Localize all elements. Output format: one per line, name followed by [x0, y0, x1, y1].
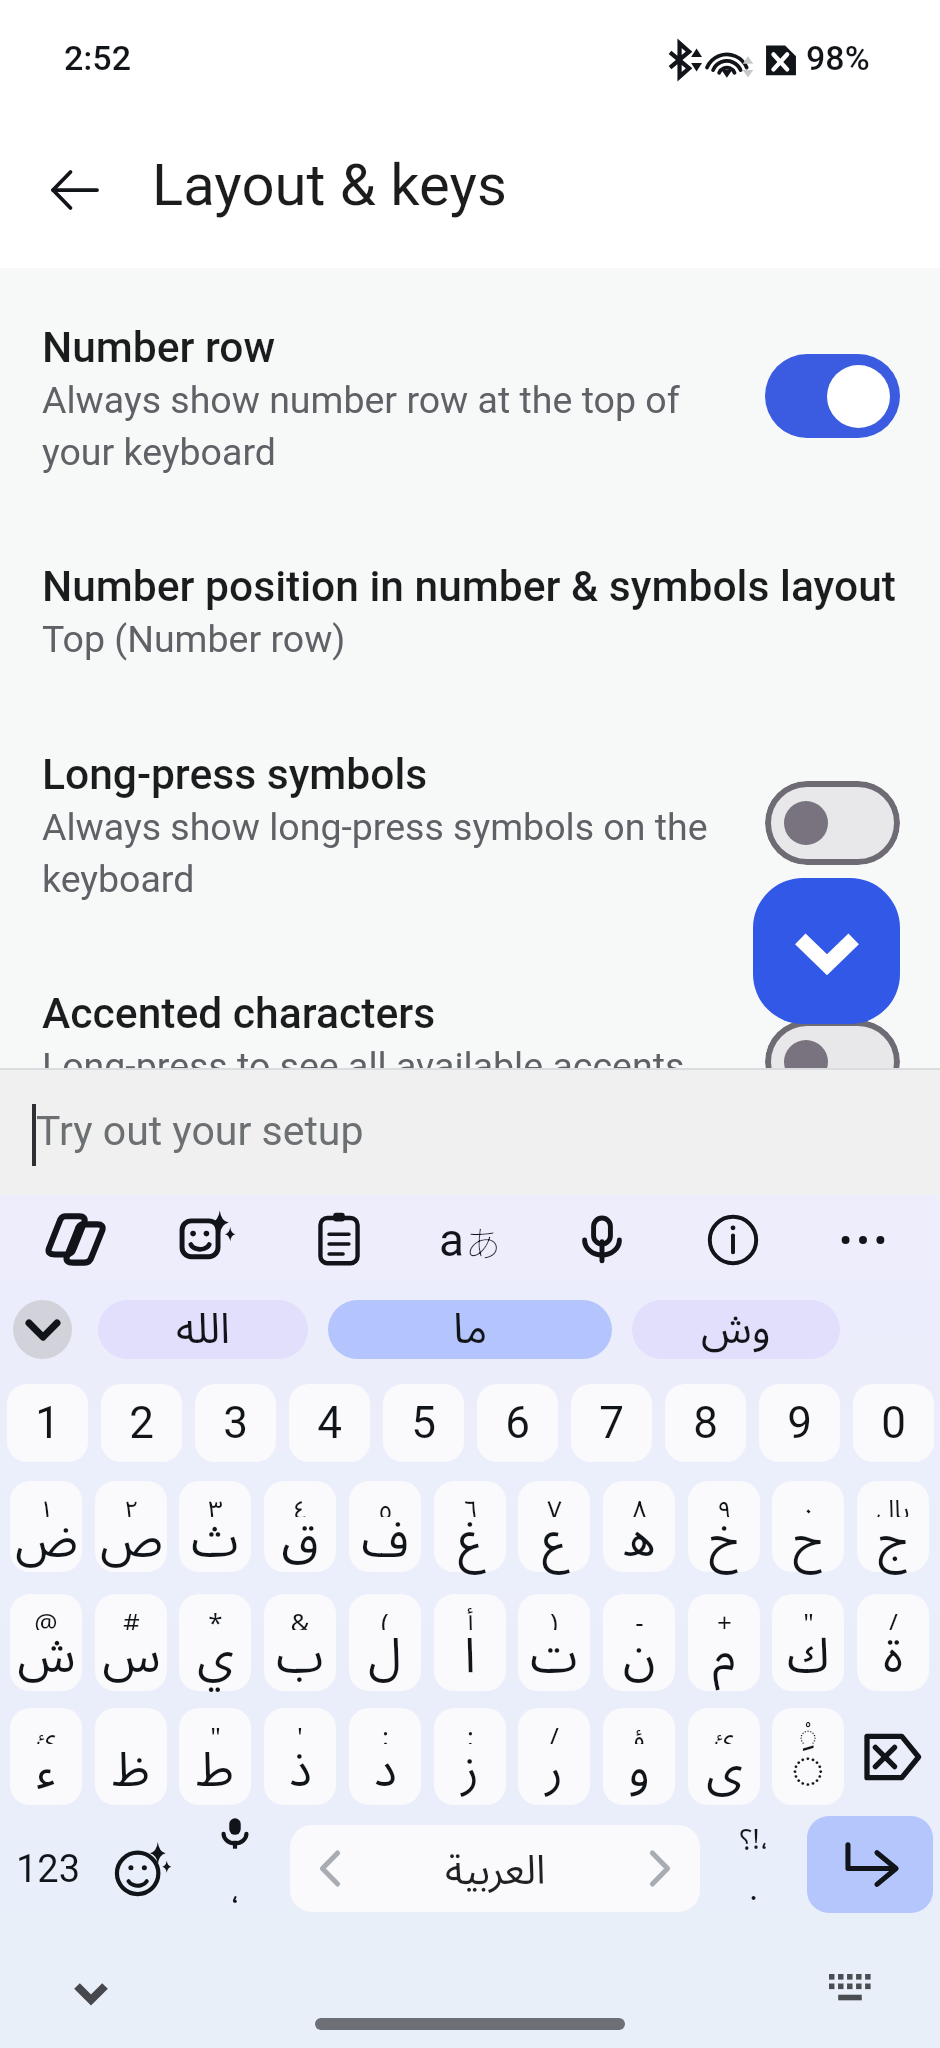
button[interactable]: Stickers: [172, 1205, 242, 1275]
staticText: ': [297, 1710, 303, 1744]
button[interactable]: Collapse: [753, 878, 900, 1024]
button[interactable]: [765, 1020, 900, 1104]
button[interactable]: Number row: [0, 323, 940, 503]
button[interactable]: Voice input: [567, 1205, 637, 1275]
staticText: ": [803, 1596, 814, 1630]
button[interactable]: [759, 1384, 840, 1462]
button[interactable]: [772, 1594, 844, 1691]
staticText: الله: [176, 1285, 230, 1374]
button[interactable]: Hide keyboard: [55, 1956, 127, 2028]
button[interactable]: [603, 1708, 675, 1805]
button[interactable]: [434, 1708, 506, 1805]
button[interactable]: [772, 1708, 844, 1805]
button[interactable]: [857, 1594, 929, 1691]
button[interactable]: [477, 1384, 558, 1462]
button[interactable]: [772, 1481, 844, 1572]
staticText: *: [208, 1596, 223, 1630]
button[interactable]: [383, 1384, 464, 1462]
button[interactable]: Enter: [807, 1816, 933, 1913]
button[interactable]: [688, 1594, 760, 1691]
button[interactable]: [603, 1481, 675, 1572]
staticText: .: [749, 1867, 759, 1909]
button[interactable]: Switch keyboard: [814, 1952, 886, 2024]
staticText: و: [628, 1720, 650, 1821]
button[interactable]: Translate: [435, 1205, 505, 1275]
button[interactable]: [264, 1481, 336, 1572]
button[interactable]: Accented characters: [0, 989, 940, 1169]
button[interactable]: [349, 1481, 421, 1572]
button[interactable]: More options: [828, 1205, 898, 1275]
staticText: د: [374, 1720, 397, 1821]
button[interactable]: [434, 1481, 506, 1572]
button[interactable]: [688, 1708, 760, 1805]
staticText: Always show number row at the top of you…: [42, 378, 680, 474]
button[interactable]: [179, 1481, 251, 1572]
button[interactable]: [95, 1708, 167, 1805]
button[interactable]: [712, 1821, 796, 1918]
staticText: س: [102, 1606, 161, 1707]
button[interactable]: [98, 1300, 308, 1359]
staticText: 9: [787, 1397, 812, 1449]
button[interactable]: [95, 1594, 167, 1691]
staticText: ٥: [378, 1483, 393, 1517]
button[interactable]: Clipboard: [304, 1205, 374, 1275]
staticText: ): [550, 1596, 558, 1630]
staticText: ع: [542, 1490, 567, 1591]
button[interactable]: [10, 1594, 82, 1691]
button[interactable]: [349, 1594, 421, 1691]
staticText: ض: [15, 1490, 78, 1591]
button[interactable]: [289, 1384, 370, 1462]
staticText: العربية: [445, 1829, 546, 1912]
button[interactable]: [179, 1708, 251, 1805]
button[interactable]: [179, 1594, 251, 1691]
button[interactable]: [434, 1594, 506, 1691]
button[interactable]: [518, 1594, 590, 1691]
button[interactable]: [518, 1481, 590, 1572]
staticText: ة: [883, 1606, 903, 1707]
button[interactable]: [101, 1384, 182, 1462]
button[interactable]: Voice typing: [194, 1821, 276, 1918]
staticText: ظ: [112, 1720, 150, 1821]
staticText: ذ: [289, 1720, 312, 1821]
button[interactable]: Expand suggestions: [13, 1300, 72, 1359]
staticText: /: [888, 1596, 898, 1630]
staticText: +: [717, 1596, 732, 1630]
staticText: ط: [196, 1720, 234, 1821]
button[interactable]: [195, 1384, 276, 1462]
staticText: ;: [467, 1710, 474, 1744]
button[interactable]: [10, 1481, 82, 1572]
button[interactable]: [349, 1708, 421, 1805]
button[interactable]: [328, 1300, 612, 1359]
button[interactable]: Emoji: [100, 1821, 182, 1918]
button[interactable]: Info: [698, 1205, 768, 1275]
button[interactable]: العربية: [290, 1825, 700, 1912]
button[interactable]: [603, 1594, 675, 1691]
button[interactable]: [857, 1481, 929, 1572]
button[interactable]: [765, 781, 900, 865]
staticText: ٩: [717, 1483, 732, 1517]
button[interactable]: [688, 1481, 760, 1572]
staticText: Always show long-press symbols on the ke…: [42, 805, 708, 901]
staticText: ص: [100, 1490, 163, 1591]
button[interactable]: [665, 1384, 746, 1462]
button[interactable]: [571, 1384, 652, 1462]
button[interactable]: [264, 1594, 336, 1691]
button[interactable]: Gboard tools: [40, 1205, 110, 1275]
staticText: ٤: [293, 1483, 308, 1517]
staticText: Long-press to see all available accents: [42, 1044, 685, 1088]
button[interactable]: [10, 1708, 82, 1805]
button[interactable]: [518, 1708, 590, 1805]
button[interactable]: [264, 1708, 336, 1805]
button[interactable]: Backspace: [848, 1708, 933, 1805]
staticText: ه: [623, 1490, 656, 1591]
button[interactable]: [765, 354, 900, 438]
button[interactable]: [632, 1300, 840, 1359]
button[interactable]: [7, 1384, 88, 1462]
button[interactable]: Long-press symbols: [0, 750, 940, 930]
button[interactable]: [95, 1481, 167, 1572]
button[interactable]: Number position in number & symbols layo…: [0, 562, 940, 742]
button[interactable]: 123: [8, 1821, 88, 1918]
button[interactable]: Back: [33, 149, 115, 231]
staticText: :: [382, 1710, 389, 1744]
button[interactable]: [853, 1384, 934, 1462]
